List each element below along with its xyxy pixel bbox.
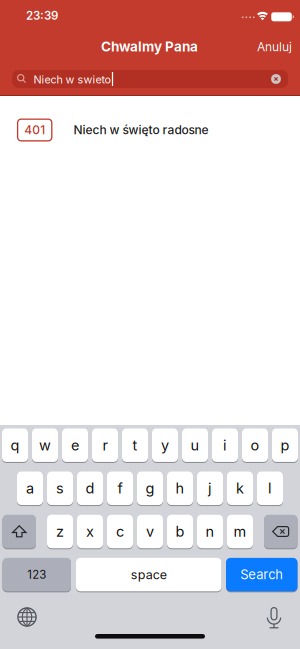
button[interactable]: m [227,514,253,549]
staticText: b [175,523,184,540]
staticText: 123 [27,568,46,581]
button[interactable]: Dictation [263,606,285,630]
button[interactable]: p [272,428,298,462]
staticText: Search [240,567,283,582]
button[interactable]: w [32,428,58,462]
staticText: m [233,523,246,540]
staticText: a [26,479,34,497]
button[interactable]: l [257,471,283,506]
staticText: v [146,523,154,540]
button[interactable]: d [77,471,103,506]
staticText: 23:39 [26,8,58,22]
button[interactable]: k [227,471,253,506]
staticText: Chwalmy Pana [101,38,198,55]
staticText: i [223,436,227,454]
button[interactable]: 401 [0,107,300,153]
button[interactable]: x [77,514,103,549]
button[interactable]: Anuluj [252,36,296,58]
staticText: r [102,436,107,454]
button[interactable]: z [47,514,73,549]
staticText: k [236,479,244,497]
staticText: n [205,523,214,540]
button[interactable]: Next keyboard [16,606,38,628]
button[interactable]: Shift [2,514,36,549]
button[interactable]: j [197,471,223,506]
button[interactable]: b [167,514,193,549]
staticText: o [250,436,259,454]
staticText: d [85,479,94,497]
button[interactable]: Niech w swieto [12,70,288,88]
button[interactable]: Clear text [271,74,281,84]
button[interactable]: h [167,471,193,506]
button[interactable]: i [212,428,238,462]
button[interactable]: c [107,514,133,549]
button[interactable]: space [76,557,221,592]
button[interactable]: e [62,428,88,462]
button[interactable]: Search [226,557,297,592]
button[interactable]: u [182,428,208,462]
staticText: x [86,523,94,540]
button[interactable]: y [152,428,178,462]
staticText: q [10,436,19,454]
button[interactable]: a [17,471,43,506]
button[interactable]: o [242,428,268,462]
staticText: y [161,436,169,454]
button[interactable]: v [137,514,163,549]
staticText: t [132,436,137,454]
button[interactable]: r [92,428,118,462]
staticText: e [71,436,79,454]
button[interactable]: 123 [2,557,71,592]
staticText: 401 [24,123,45,137]
button[interactable]: s [47,471,73,506]
staticText: Anuluj [257,40,292,54]
staticText: f [117,479,122,497]
staticText: l [268,479,272,497]
staticText: s [56,479,64,497]
staticText: p [280,436,289,454]
button[interactable]: Delete [264,514,297,549]
button[interactable]: f [107,471,133,506]
staticText: space [131,567,167,582]
staticText: w [39,436,51,454]
staticText: h [175,479,184,497]
staticText: j [208,479,212,497]
button[interactable]: g [137,471,163,506]
staticText: g [145,479,154,497]
button[interactable]: n [197,514,223,549]
staticText: c [116,523,124,540]
button[interactable]: t [122,428,148,462]
button[interactable]: q [2,428,28,462]
staticText: u [190,436,199,454]
staticText: z [56,523,64,540]
staticText: Niech w święto radosne [73,123,208,137]
staticText: Niech w swieto [33,73,110,86]
